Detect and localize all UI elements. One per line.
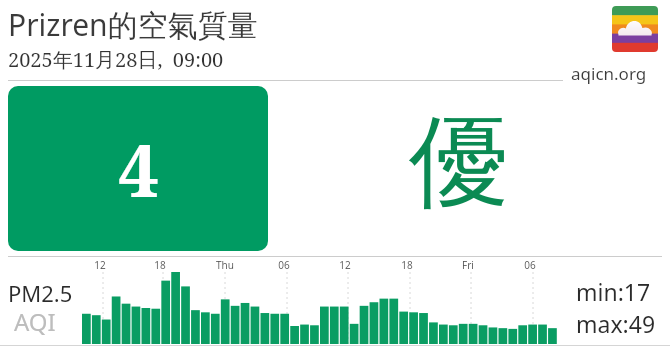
staticText: 12: [339, 258, 351, 272]
staticText: AQI: [14, 305, 56, 338]
staticText: 06: [278, 258, 290, 272]
staticText: Thu: [216, 258, 234, 272]
staticText: 18: [154, 258, 166, 272]
staticText: PM2.5: [8, 278, 73, 308]
staticText: 4: [118, 120, 159, 218]
staticText: 12: [94, 258, 106, 272]
button[interactable]: 4: [8, 86, 268, 251]
staticText: Fri: [462, 258, 474, 272]
button[interactable]: aqicn.org logo: [612, 6, 658, 52]
staticText: 2025年11月28日, 09:00: [8, 46, 224, 73]
staticText: Prizren的空氣質量: [8, 4, 258, 45]
staticText: 06: [524, 258, 536, 272]
button[interactable]: PM2.5 AQI history chart: [0, 270, 670, 344]
staticText: aqicn.org: [571, 62, 647, 85]
staticText: min:17: [576, 276, 651, 307]
staticText: max:49: [576, 308, 656, 339]
staticText: 18: [401, 258, 413, 272]
staticText: 優: [409, 100, 509, 226]
